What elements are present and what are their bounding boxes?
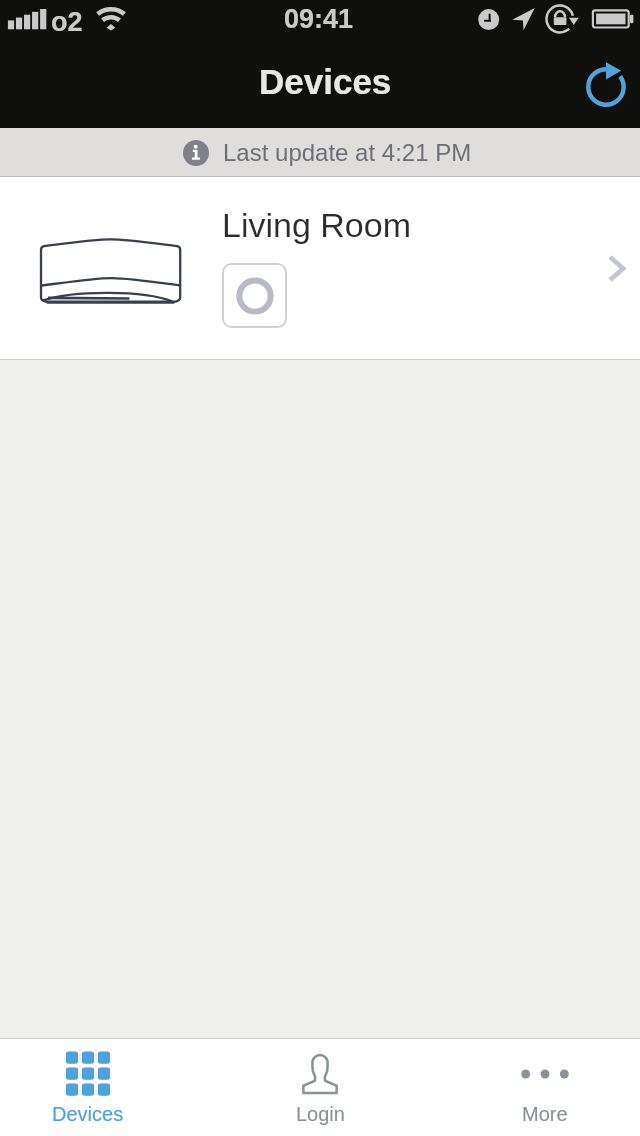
staticText: Devices [259,62,392,101]
staticText: Last update at 4:21 PM [223,139,472,166]
staticText: More [522,1103,568,1125]
staticText: o2 [51,7,83,37]
button[interactable]: Living Room [0,177,640,359]
staticText: 09:41 [284,4,354,34]
staticText: Login [296,1103,345,1125]
button[interactable]: Power [222,263,287,328]
button[interactable]: More [470,1039,620,1136]
staticText: Living Room [222,206,411,244]
button[interactable]: Refresh [574,55,638,119]
staticText: Devices [52,1103,124,1125]
button[interactable]: Devices [13,1039,163,1136]
button[interactable]: Login [245,1039,395,1136]
